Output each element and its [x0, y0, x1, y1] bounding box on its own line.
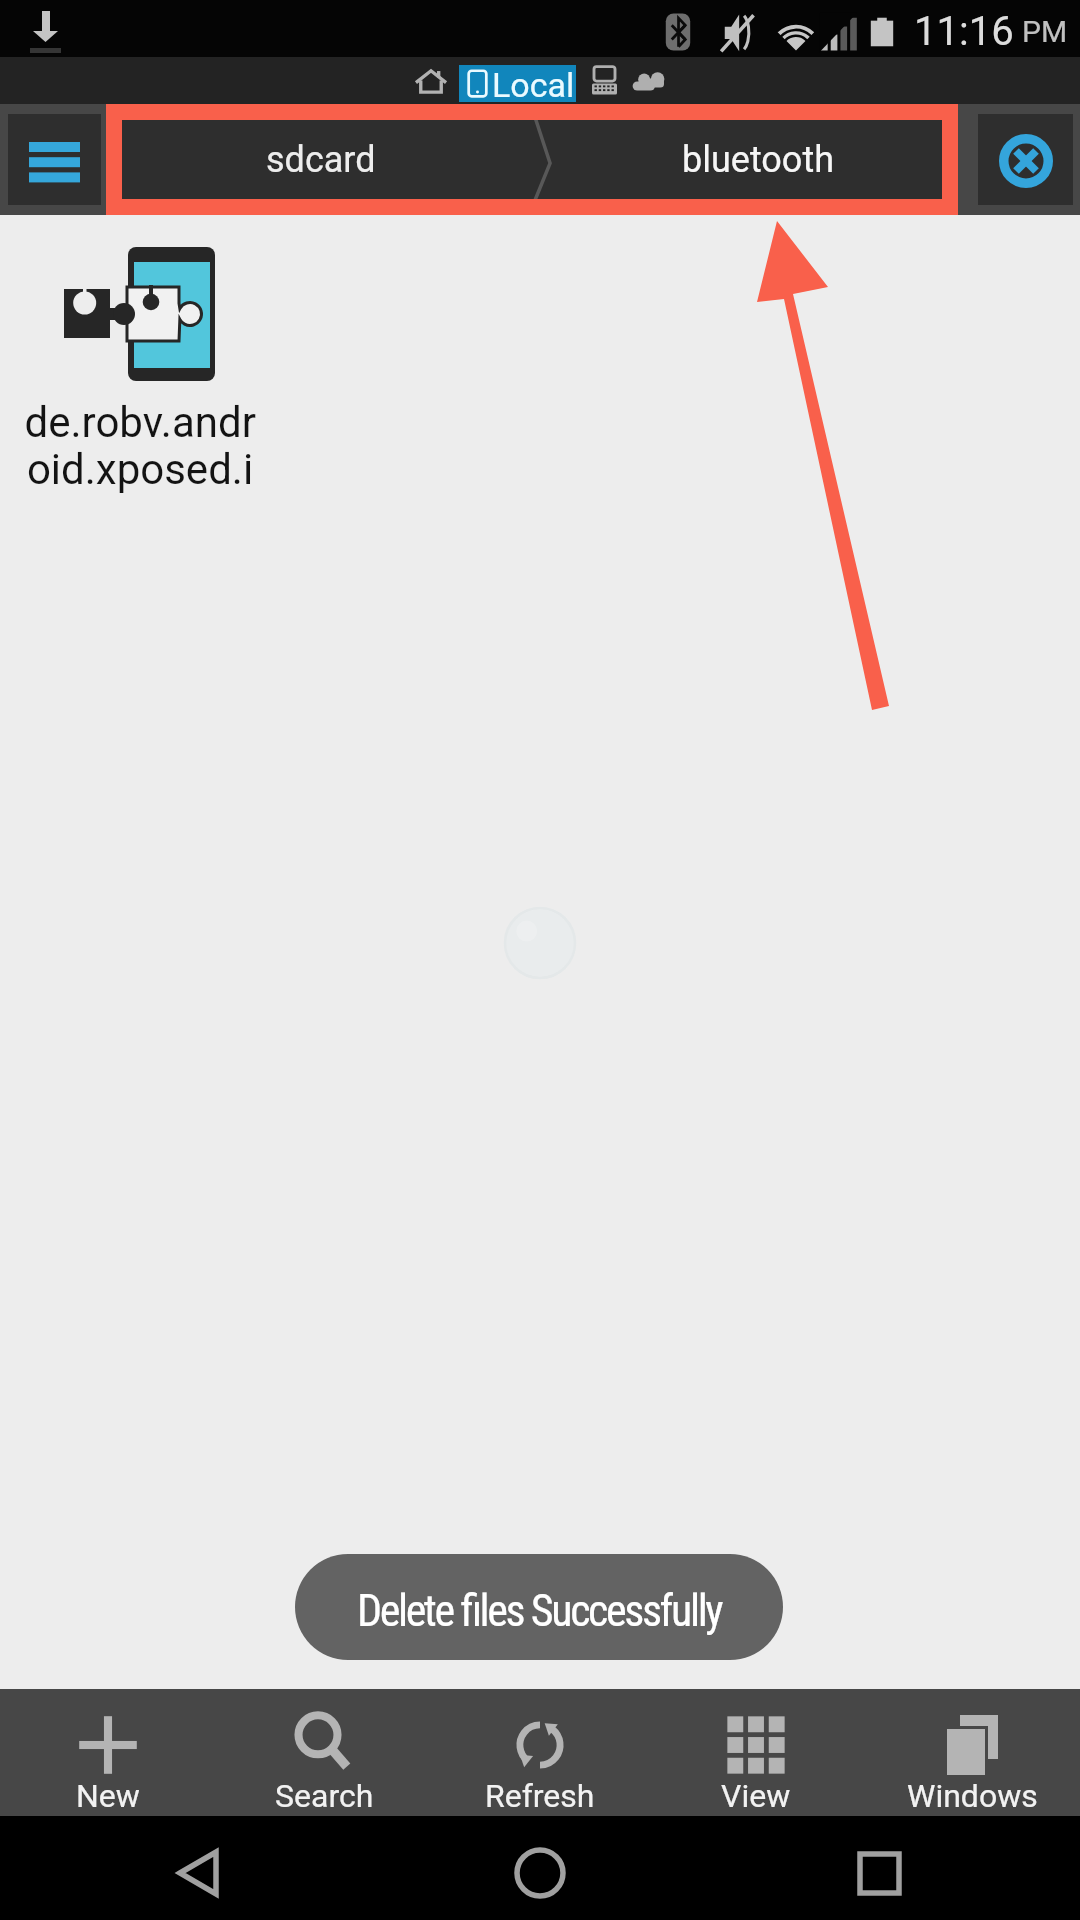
button[interactable]: de.robv.android.xposed.i — [0, 215, 280, 525]
staticText: View — [721, 1777, 791, 1815]
button[interactable]: Menu — [8, 114, 101, 205]
button[interactable]: Delete files Successfully — [295, 1554, 783, 1660]
button[interactable]: Close — [978, 114, 1073, 205]
staticText: Local — [492, 65, 575, 102]
button[interactable]: Refresh — [432, 1689, 648, 1816]
button[interactable]: Home — [404, 57, 458, 104]
staticText: Delete files Successfully — [357, 1585, 722, 1637]
staticText: Search — [275, 1777, 374, 1815]
button[interactable]: Search — [216, 1689, 432, 1816]
button[interactable]: sdcard — [121, 119, 521, 200]
button[interactable]: Recents — [802, 1816, 957, 1920]
staticText: bluetooth — [682, 139, 834, 181]
staticText: de.robv.android.xposed.i — [18, 398, 262, 494]
button[interactable]: bluetooth — [521, 119, 943, 200]
button[interactable]: Cloud — [626, 57, 670, 104]
staticText: PM — [1022, 14, 1068, 49]
staticText: New — [76, 1777, 140, 1815]
button[interactable]: Home — [462, 1816, 617, 1920]
staticText: Windows — [907, 1777, 1038, 1815]
staticText: sdcard — [266, 139, 376, 181]
button[interactable]: Back — [120, 1816, 275, 1920]
button[interactable]: New — [0, 1689, 216, 1816]
staticText: Refresh — [485, 1777, 595, 1815]
button[interactable]: View — [648, 1689, 864, 1816]
button[interactable]: Windows — [864, 1689, 1080, 1816]
button[interactable]: Network — [581, 57, 627, 104]
staticText: 11:16 — [914, 8, 1014, 55]
button[interactable]: Local — [459, 65, 576, 102]
